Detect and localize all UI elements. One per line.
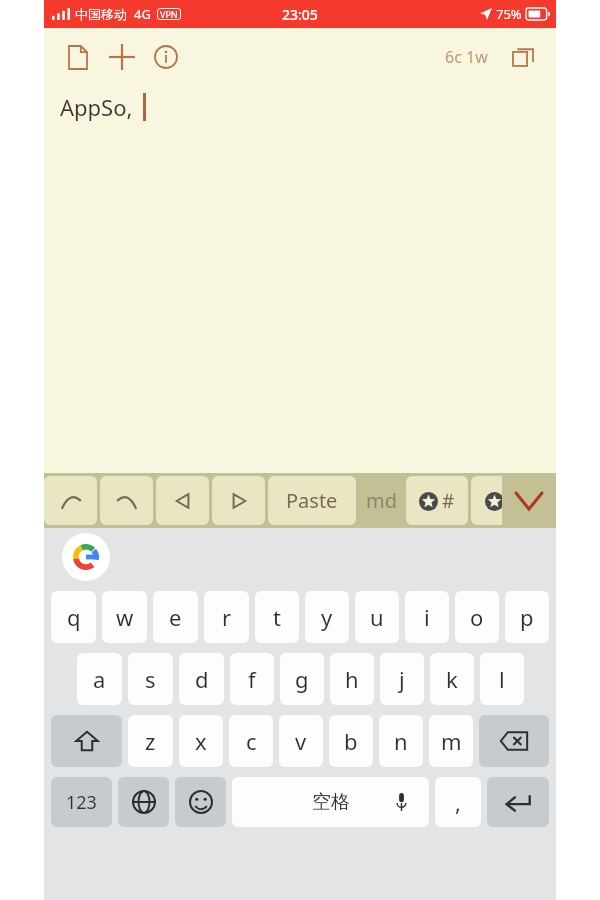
button[interactable]: e: [153, 591, 198, 643]
button[interactable]: f: [230, 653, 274, 705]
button[interactable]: u: [355, 591, 399, 643]
staticText: t: [273, 602, 281, 632]
button[interactable]: Markdown **: [471, 476, 543, 525]
staticText: v: [295, 726, 307, 756]
staticText: h: [345, 664, 359, 694]
staticText: 空格: [312, 790, 350, 814]
button[interactable]: q: [51, 591, 96, 643]
staticText: e: [169, 602, 182, 632]
staticText: Paste: [286, 487, 338, 514]
staticText: p: [520, 602, 534, 632]
button[interactable]: x: [179, 715, 223, 767]
button[interactable]: i: [405, 591, 449, 643]
button[interactable]: New document: [56, 35, 100, 79]
staticText: 23:05: [282, 5, 318, 24]
staticText: 75%: [496, 5, 522, 23]
button[interactable]: o: [455, 591, 499, 643]
button[interactable]: d: [179, 653, 224, 705]
staticText: j: [399, 664, 405, 694]
button[interactable]: Info: [144, 35, 188, 79]
staticText: u: [370, 602, 384, 632]
button[interactable]: Undo: [44, 476, 97, 525]
button[interactable]: Paste: [268, 476, 356, 525]
button[interactable]: w: [102, 591, 147, 643]
button[interactable]: h: [330, 653, 374, 705]
button[interactable]: Markdown #: [406, 476, 468, 525]
staticText: AppSo,: [60, 92, 133, 122]
button[interactable]: r: [204, 591, 249, 643]
button[interactable]: a: [77, 653, 122, 705]
staticText: o: [470, 602, 484, 632]
staticText: ,: [455, 787, 461, 817]
staticText: 123: [66, 790, 97, 815]
button[interactable]: j: [380, 653, 424, 705]
button[interactable]: Google search: [62, 533, 110, 581]
button[interactable]: z: [128, 715, 173, 767]
staticText: md: [366, 487, 397, 514]
button[interactable]: n: [379, 715, 423, 767]
button[interactable]: Add: [100, 35, 144, 79]
button[interactable]: Redo: [100, 476, 153, 525]
staticText: k: [446, 664, 458, 694]
button[interactable]: Move right: [212, 476, 265, 525]
staticText: y: [321, 602, 333, 632]
staticText: 4G: [134, 5, 151, 23]
button[interactable]: 6c 1w: [445, 46, 488, 68]
button[interactable]: k: [430, 653, 474, 705]
staticText: c: [246, 726, 257, 756]
staticText: f: [248, 664, 256, 694]
button[interactable]: p: [505, 591, 549, 643]
staticText: g: [295, 664, 309, 694]
button[interactable]: c: [229, 715, 273, 767]
staticText: n: [394, 726, 408, 756]
button[interactable]: Shift: [51, 715, 122, 767]
button[interactable]: Enter: [487, 777, 549, 827]
button[interactable]: Backspace: [479, 715, 549, 767]
button[interactable]: y: [305, 591, 349, 643]
button[interactable]: s: [128, 653, 173, 705]
staticText: b: [344, 726, 358, 756]
staticText: i: [424, 602, 430, 632]
button[interactable]: Emoji: [175, 777, 226, 827]
button[interactable]: 123: [51, 777, 112, 827]
button[interactable]: m: [429, 715, 473, 767]
button[interactable]: v: [279, 715, 323, 767]
button[interactable]: Language: [118, 777, 169, 827]
staticText: x: [195, 726, 207, 756]
staticText: s: [145, 664, 156, 694]
staticText: VPN: [160, 8, 178, 20]
button[interactable]: md: [356, 476, 406, 525]
button[interactable]: ,: [435, 777, 481, 827]
staticText: d: [195, 664, 209, 694]
staticText: a: [93, 664, 106, 694]
staticText: 中国移动: [75, 6, 127, 22]
button[interactable]: Hide keyboard: [502, 473, 556, 528]
button[interactable]: g: [280, 653, 324, 705]
button[interactable]: Move left: [156, 476, 209, 525]
staticText: #: [442, 488, 455, 514]
button[interactable]: b: [329, 715, 373, 767]
button[interactable]: Windows: [502, 36, 544, 78]
staticText: z: [145, 726, 156, 756]
staticText: **: [508, 488, 529, 514]
staticText: m: [441, 726, 462, 756]
button[interactable]: t: [255, 591, 299, 643]
staticText: l: [499, 664, 505, 694]
staticText: w: [116, 602, 134, 632]
staticText: q: [67, 602, 81, 632]
button[interactable]: l: [480, 653, 524, 705]
staticText: r: [222, 602, 232, 632]
button[interactable]: 空格: [232, 777, 429, 827]
